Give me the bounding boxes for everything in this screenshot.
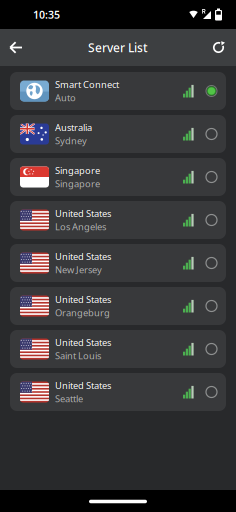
staticText: Sydney xyxy=(55,134,87,147)
staticText: Los Angeles xyxy=(55,220,106,233)
staticText: Auto xyxy=(55,91,76,104)
button[interactable]: Australia xyxy=(10,115,226,153)
button[interactable]: United States xyxy=(10,330,226,368)
staticText: Smart Connect xyxy=(55,78,119,90)
button[interactable]: United States xyxy=(10,287,226,325)
button[interactable]: Back xyxy=(0,29,23,65)
button[interactable]: Smart Connect xyxy=(10,72,226,110)
staticText: United States xyxy=(55,293,111,305)
staticText: Seattle xyxy=(55,392,83,405)
staticText: United States xyxy=(55,379,111,391)
button[interactable]: Singapore xyxy=(10,158,226,196)
button[interactable]: United States xyxy=(10,201,226,239)
button[interactable]: United States xyxy=(10,244,226,282)
staticText: Orangeburg xyxy=(55,306,110,319)
staticText: United States xyxy=(55,207,111,219)
staticText: Saint Louis xyxy=(55,349,101,362)
staticText: 10:35 xyxy=(33,7,60,22)
button[interactable]: Refresh xyxy=(212,29,236,66)
staticText: New Jersey xyxy=(55,263,102,276)
staticText: Server List xyxy=(88,39,148,55)
staticText: United States xyxy=(55,250,111,262)
staticText: Singapore xyxy=(55,177,100,190)
button[interactable]: United States xyxy=(10,373,226,411)
staticText: Singapore xyxy=(55,164,100,176)
staticText: Australia xyxy=(55,121,92,133)
staticText: United States xyxy=(55,336,111,348)
